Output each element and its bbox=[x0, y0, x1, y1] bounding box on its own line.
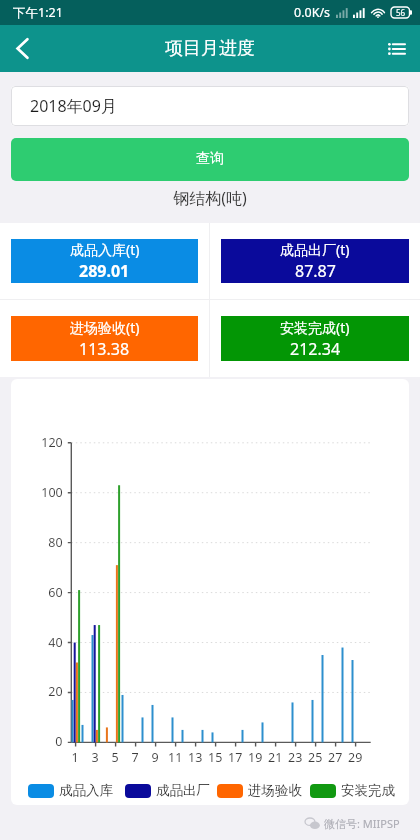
button[interactable]: 成品入库(t) bbox=[11, 239, 198, 283]
staticText: 289.01 bbox=[79, 260, 130, 282]
button[interactable]: 成品入库 bbox=[28, 782, 113, 799]
staticText: 安装完成(t) bbox=[280, 318, 350, 337]
staticText: 0.0K/s bbox=[294, 4, 331, 21]
staticText: 成品入库 bbox=[59, 782, 113, 799]
staticText: 113.38 bbox=[79, 338, 130, 360]
staticText: 进场验收(t) bbox=[70, 318, 140, 337]
staticText: 2018年09月 bbox=[30, 95, 117, 117]
staticText: 下午1:21 bbox=[13, 4, 63, 21]
staticText: 查询 bbox=[196, 150, 224, 168]
button[interactable]: 2018年09月 bbox=[11, 86, 409, 126]
staticText: 212.34 bbox=[290, 338, 341, 360]
button[interactable]: Back bbox=[0, 25, 47, 72]
button[interactable]: 进场验收(t) bbox=[11, 316, 198, 361]
staticText: 安装完成 bbox=[341, 782, 395, 799]
button[interactable]: 进场验收 bbox=[217, 782, 302, 799]
button[interactable]: 成品出厂 bbox=[125, 782, 210, 799]
staticText: 成品出厂(t) bbox=[280, 240, 350, 259]
staticText: 87.87 bbox=[295, 260, 336, 282]
button[interactable]: 查询 bbox=[11, 138, 409, 181]
button[interactable]: 安装完成 bbox=[310, 782, 395, 799]
staticText: 成品入库(t) bbox=[70, 240, 140, 259]
staticText: 进场验收 bbox=[248, 782, 302, 799]
staticText: 微信号: MIIPSP bbox=[324, 816, 400, 831]
button[interactable]: 成品出厂(t) bbox=[221, 239, 409, 283]
staticText: 钢结构(吨) bbox=[0, 187, 420, 209]
staticText: 项目月进度 bbox=[165, 37, 255, 60]
staticText: 成品出厂 bbox=[156, 782, 210, 799]
button[interactable]: 安装完成(t) bbox=[221, 316, 409, 361]
staticText: 56 bbox=[396, 7, 406, 18]
button[interactable]: Menu bbox=[373, 25, 420, 72]
